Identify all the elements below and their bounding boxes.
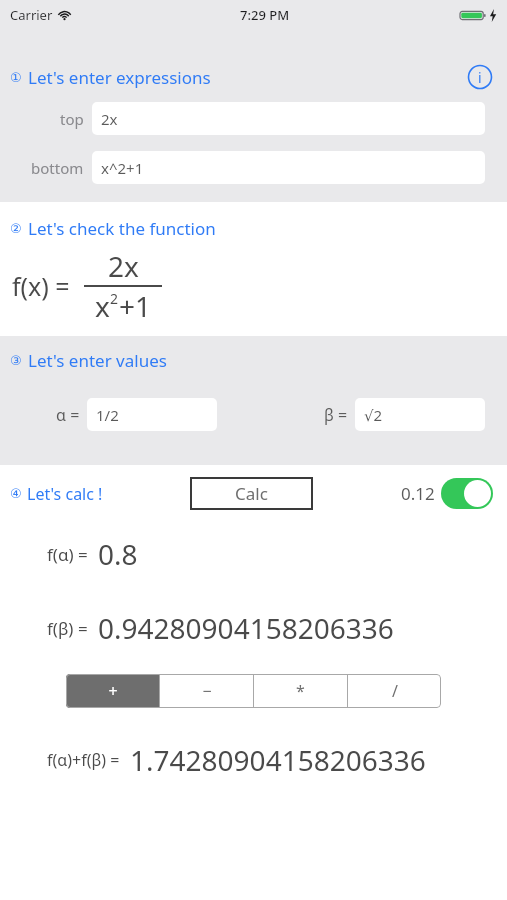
button[interactable]: + <box>66 674 159 708</box>
staticText: * <box>296 680 305 702</box>
staticText: x <box>95 287 110 325</box>
staticText: + <box>108 680 118 702</box>
button[interactable]: / <box>348 674 441 708</box>
staticText: Calc <box>235 482 268 505</box>
button[interactable]: 2x <box>92 102 485 135</box>
staticText: 0.94280904158206336 <box>98 609 394 647</box>
staticText: f(α) = <box>47 543 88 566</box>
staticText: β = <box>324 404 348 426</box>
staticText: f(α)+f(β) = <box>47 749 120 771</box>
staticText: − <box>202 680 212 702</box>
button[interactable]: Information <box>467 64 493 90</box>
staticText: Let's check the function <box>28 217 216 240</box>
staticText: 2 <box>110 289 119 308</box>
staticText: f(x) = <box>12 269 70 303</box>
staticText: 0.12 <box>401 482 435 505</box>
other: Wi-Fi <box>58 9 71 22</box>
staticText: Carrier <box>10 6 53 24</box>
staticText: 0.8 <box>98 535 138 573</box>
staticText: / <box>392 680 398 702</box>
button[interactable]: Toggle precision <box>441 478 493 509</box>
button[interactable]: Calc <box>190 477 313 510</box>
staticText: x^2+1 <box>101 158 144 178</box>
staticText: Let's enter expressions <box>28 66 211 89</box>
button[interactable]: 1/2 <box>87 398 217 431</box>
button[interactable]: √2 <box>355 398 485 431</box>
staticText: i <box>478 68 482 87</box>
staticText: top <box>60 109 84 129</box>
staticText: √2 <box>364 405 383 425</box>
staticText: ② <box>10 221 22 236</box>
staticText: ③ <box>10 353 22 368</box>
button[interactable]: − <box>160 674 253 708</box>
staticText: 2x <box>101 109 118 129</box>
staticText: 7:29 PM <box>240 6 290 24</box>
staticText: ① <box>10 70 22 85</box>
staticText: α = <box>56 404 80 426</box>
staticText: Let's enter values <box>28 349 167 372</box>
staticText: bottom <box>31 158 84 178</box>
staticText: ④ <box>10 486 22 501</box>
staticText: +1 <box>119 287 152 325</box>
staticText: Let's calc ! <box>27 483 103 505</box>
staticText: f(β) = <box>47 617 88 640</box>
staticText: 1.74280904158206336 <box>130 741 426 779</box>
button[interactable]: * <box>254 674 347 708</box>
button[interactable]: x^2+1 <box>92 151 485 184</box>
staticText: 2x <box>108 247 139 285</box>
staticText: 1/2 <box>96 405 119 425</box>
